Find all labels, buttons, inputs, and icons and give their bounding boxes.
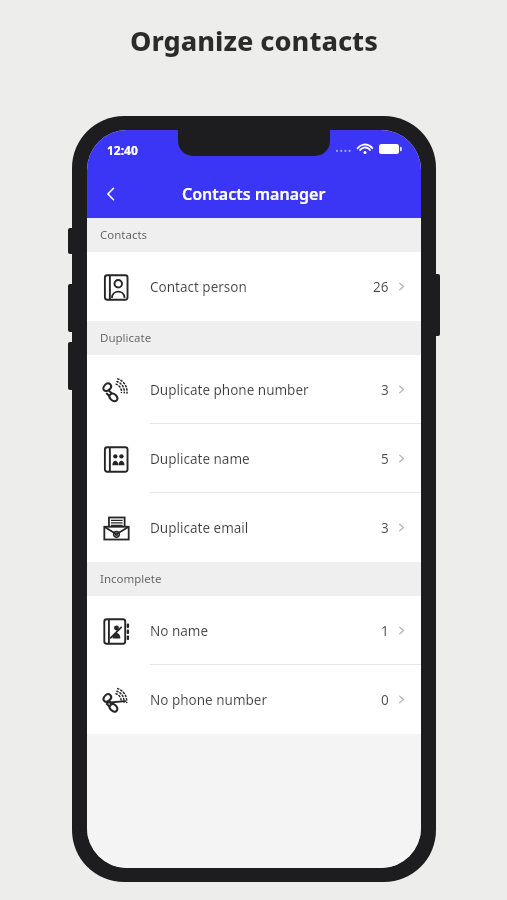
staticText: Duplicate [100, 330, 152, 346]
staticText: No name [150, 622, 381, 640]
staticText: 12:40 [107, 142, 138, 158]
staticText: No phone number [150, 691, 381, 709]
staticText: Duplicate phone number [150, 381, 381, 399]
staticText: 3 [381, 381, 389, 399]
button[interactable]: Duplicate name [87, 424, 421, 493]
staticText: 26 [373, 278, 389, 296]
staticText: Duplicate name [150, 450, 381, 468]
staticText: 3 [381, 519, 389, 537]
button[interactable]: No phone number [87, 665, 421, 734]
staticText: Contact person [150, 278, 373, 296]
staticText: Organize contacts [130, 22, 378, 59]
staticText: 5 [381, 450, 389, 468]
staticText: 1 [381, 622, 389, 640]
button[interactable]: Duplicate email [87, 493, 421, 562]
staticText: Duplicate email [150, 519, 381, 537]
button[interactable]: Contact person [87, 252, 421, 321]
staticText: Contacts manager [182, 183, 326, 205]
staticText: Incomplete [100, 571, 162, 587]
button[interactable]: Duplicate phone number [87, 355, 421, 424]
button[interactable]: Back [93, 176, 129, 212]
staticText: 0 [381, 691, 389, 709]
staticText: Contacts [100, 227, 148, 243]
button[interactable]: No name [87, 596, 421, 665]
